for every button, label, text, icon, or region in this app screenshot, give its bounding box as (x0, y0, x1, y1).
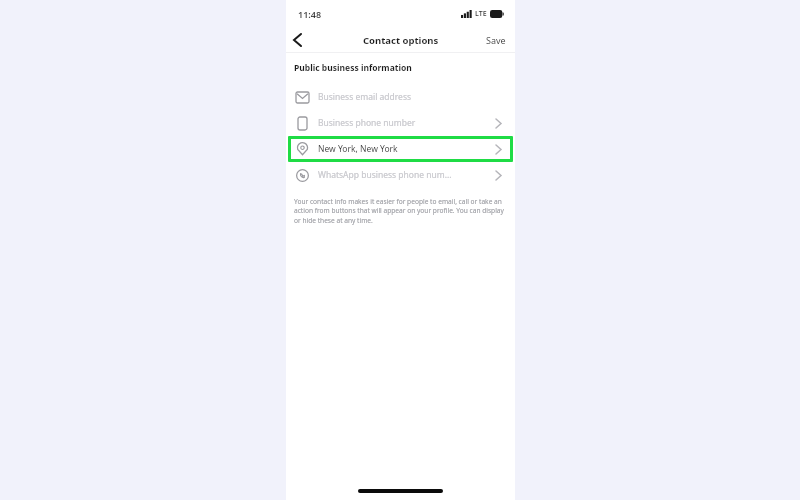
staticText: Contact options (363, 34, 439, 47)
staticText: Public business information (294, 62, 412, 74)
button[interactable]: Back (286, 29, 308, 51)
button[interactable]: Business email address (288, 84, 513, 110)
staticText: LTE (475, 9, 487, 19)
staticText: Save (486, 34, 506, 46)
button[interactable]: Save (477, 31, 515, 49)
staticText: Your contact info makes it easier for pe… (294, 197, 505, 225)
staticText: Business phone number (318, 117, 493, 129)
button[interactable]: Business phone number (288, 110, 513, 136)
staticText: Business email address (318, 91, 493, 103)
button[interactable]: New York, New York (288, 136, 513, 162)
button[interactable]: WhatsApp business phone num... (288, 162, 513, 188)
staticText: New York, New York (318, 143, 493, 155)
staticText: WhatsApp business phone num... (318, 169, 493, 181)
staticText: 11:48 (298, 8, 322, 20)
